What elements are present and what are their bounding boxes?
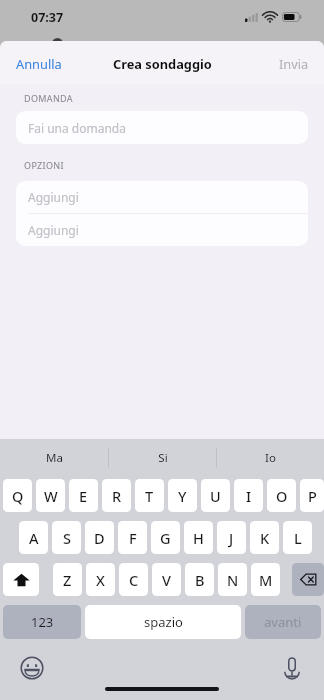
staticText: W <box>44 486 58 506</box>
button[interactable]: Fai una domanda <box>16 111 308 144</box>
button[interactable]: Emoji keyboard <box>20 656 44 680</box>
staticText: F <box>129 528 137 548</box>
staticText: Z <box>63 570 72 590</box>
button[interactable]: L <box>283 521 312 554</box>
staticText: O <box>276 486 288 506</box>
staticText: Invia <box>279 55 309 72</box>
staticText: R <box>112 486 122 506</box>
staticText: A <box>29 528 39 548</box>
staticText: N <box>227 570 239 590</box>
button[interactable]: avanti <box>245 605 321 639</box>
button[interactable]: O <box>267 479 296 512</box>
button[interactable]: Aggiungi <box>16 181 308 213</box>
button[interactable]: C <box>119 563 148 596</box>
staticText: Gruppo Classe <box>72 39 150 54</box>
button[interactable]: Q <box>3 479 32 512</box>
button[interactable]: A <box>19 521 48 554</box>
button[interactable]: E <box>69 479 98 512</box>
button[interactable]: G <box>151 521 180 554</box>
button[interactable]: W <box>36 479 65 512</box>
staticText: H <box>193 528 204 548</box>
button[interactable]: S <box>52 521 81 554</box>
staticText: Annulla <box>16 55 62 72</box>
button[interactable]: Dictation <box>280 656 304 680</box>
staticText: Fai una domanda <box>28 120 126 136</box>
button[interactable]: I <box>234 479 263 512</box>
button[interactable]: H <box>184 521 213 554</box>
button[interactable]: Invia <box>264 46 324 81</box>
button[interactable]: Ma <box>0 439 108 477</box>
button[interactable]: P <box>300 479 324 512</box>
staticText: K <box>260 528 270 548</box>
staticText: avanti <box>264 613 302 631</box>
button[interactable]: V <box>152 563 181 596</box>
staticText: I <box>246 486 252 506</box>
button[interactable]: Io <box>217 439 324 477</box>
staticText: S <box>63 528 71 548</box>
button[interactable]: R <box>102 479 131 512</box>
button[interactable]: spazio <box>85 605 241 639</box>
staticText: Si <box>158 450 168 466</box>
staticText: 123 <box>31 613 54 631</box>
staticText: Io <box>265 450 276 466</box>
staticText: P <box>308 486 317 506</box>
staticText: C <box>129 570 139 590</box>
button[interactable]: Si <box>109 439 216 477</box>
button[interactable]: 123 <box>3 605 81 639</box>
staticText: G <box>160 528 171 548</box>
button[interactable]: F <box>118 521 147 554</box>
button[interactable]: X <box>86 563 115 596</box>
button[interactable]: Backspace <box>292 563 324 596</box>
button[interactable]: M <box>251 563 280 596</box>
button[interactable]: Aggiungi <box>16 214 308 246</box>
staticText: Q <box>12 486 24 506</box>
staticText: J <box>229 528 234 548</box>
button[interactable]: B <box>185 563 214 596</box>
button[interactable]: J <box>217 521 246 554</box>
staticText: E <box>79 486 88 506</box>
staticText: M <box>259 570 273 590</box>
staticText: V <box>162 570 171 590</box>
staticText: Aggiungi <box>28 222 79 238</box>
button[interactable]: Annulla <box>0 46 78 81</box>
staticText: Crea sondaggio <box>113 55 212 72</box>
staticText: DOMANDA <box>24 92 73 104</box>
button[interactable]: N <box>218 563 247 596</box>
staticText: 07:37 <box>31 9 64 26</box>
staticText: Y <box>178 486 187 506</box>
staticText: B <box>195 570 205 590</box>
button[interactable]: T <box>135 479 164 512</box>
button[interactable]: D <box>85 521 114 554</box>
staticText: U <box>210 486 221 506</box>
staticText: D <box>94 528 105 548</box>
button[interactable]: U <box>201 479 230 512</box>
staticText: OPZIONI <box>24 159 64 171</box>
button[interactable]: Y <box>168 479 197 512</box>
staticText: Aggiungi <box>28 189 79 205</box>
staticText: T <box>145 486 154 506</box>
staticText: Ma <box>46 450 63 466</box>
staticText: X <box>96 570 105 590</box>
button[interactable]: K <box>250 521 279 554</box>
button[interactable]: Shift <box>3 563 39 596</box>
button[interactable]: Z <box>53 563 82 596</box>
staticText: spazio <box>144 613 183 631</box>
staticText: L <box>294 528 302 548</box>
